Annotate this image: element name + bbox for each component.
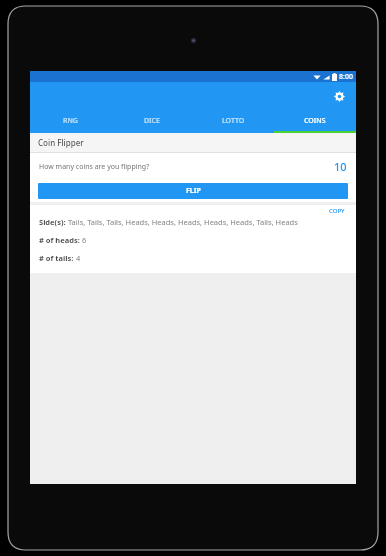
staticText: 6 xyxy=(82,235,87,245)
staticText: LOTTO xyxy=(222,116,245,126)
button[interactable]: Settings xyxy=(328,85,350,107)
button[interactable]: LOTTO xyxy=(192,109,274,133)
staticText: FLIP xyxy=(186,186,201,196)
button[interactable]: COPY xyxy=(327,205,347,217)
staticText: 10 xyxy=(334,159,347,174)
staticText: Coin Flipper xyxy=(38,137,84,148)
staticText: # of tails: xyxy=(39,253,76,263)
staticText: DICE xyxy=(144,116,160,126)
button[interactable]: COINS xyxy=(274,109,356,133)
staticText: # of heads: xyxy=(39,235,82,245)
staticText: COINS xyxy=(304,116,326,126)
staticText: 8:00 xyxy=(339,72,353,82)
staticText: RNG xyxy=(63,116,78,126)
staticText: Tails, Tails, Tails, Heads, Heads, Heads… xyxy=(68,217,298,227)
button[interactable]: How many coins are you flipping? xyxy=(30,153,356,180)
button[interactable]: DICE xyxy=(111,109,192,133)
button[interactable]: RNG xyxy=(30,109,111,133)
staticText: COPY xyxy=(329,207,345,215)
staticText: How many coins are you flipping? xyxy=(39,162,150,172)
button[interactable]: FLIP xyxy=(38,183,348,199)
staticText: Side(s): xyxy=(39,217,68,227)
staticText: 4 xyxy=(76,253,81,263)
